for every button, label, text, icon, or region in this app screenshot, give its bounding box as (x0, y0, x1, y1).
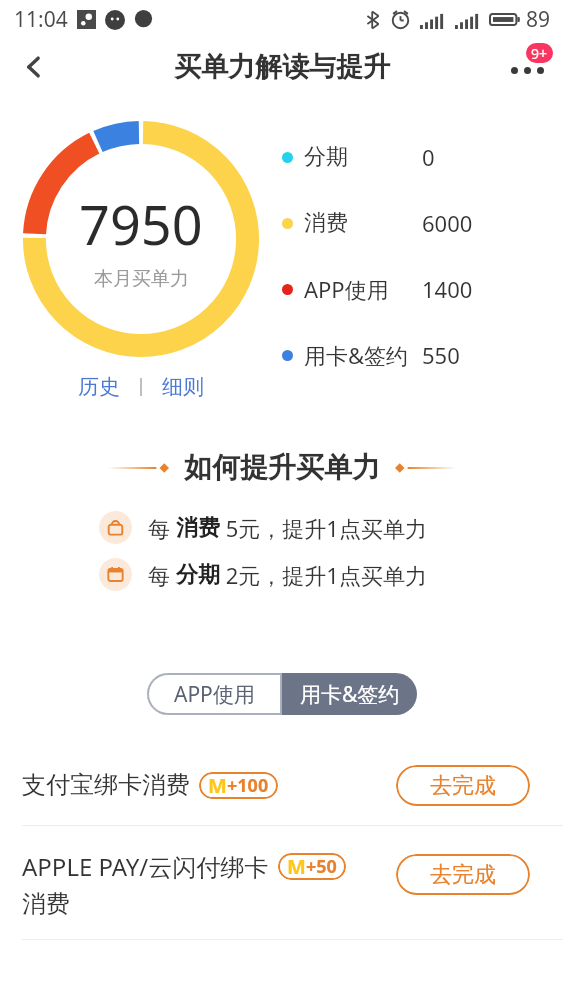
staticText: 用卡&签约 (304, 340, 409, 370)
staticText: M (208, 772, 227, 799)
button[interactable]: More options (499, 39, 555, 95)
staticText: 消费 (304, 209, 348, 237)
staticText: 历史 (78, 374, 120, 400)
staticText: 如何提升买单力 (184, 450, 380, 485)
staticText: 支付宝绑卡消费 (22, 770, 190, 800)
button[interactable]: APP使用 (147, 673, 282, 715)
staticText: 6000 (422, 208, 473, 238)
staticText: 买单力解读与提升 (174, 50, 390, 84)
staticText: M (287, 853, 306, 880)
button[interactable]: 细则 (156, 370, 210, 404)
staticText: 7950 (79, 187, 203, 261)
staticText: APP使用 (304, 274, 389, 304)
staticText: 每 (148, 560, 176, 590)
staticText: 1400 (422, 274, 473, 304)
staticText: 0 (422, 142, 435, 172)
staticText: 细则 (162, 374, 204, 400)
staticText: APP使用 (174, 680, 255, 709)
staticText: 去完成 (430, 772, 496, 800)
staticText: 550 (422, 340, 460, 370)
staticText: 分期 (176, 561, 220, 589)
staticText: 分期 (304, 143, 348, 171)
staticText: 本月买单力 (94, 267, 189, 291)
staticText: 5元，提升1点买单力 (220, 513, 427, 543)
staticText: 9+ (531, 44, 548, 63)
staticText: 每 (148, 513, 176, 543)
button[interactable]: 去完成 (396, 765, 530, 806)
button[interactable]: 去完成 (396, 854, 530, 895)
button[interactable]: Back (10, 43, 58, 91)
staticText: 用卡&签约 (300, 680, 400, 709)
staticText: +100 (227, 773, 269, 798)
button[interactable]: 用卡&签约 (282, 673, 417, 715)
staticText: 消费 (22, 889, 70, 919)
staticText: 2元，提升1点买单力 (220, 560, 427, 590)
staticText: 去完成 (430, 861, 496, 889)
staticText: 消费 (176, 514, 220, 542)
staticText: APPLE PAY/云闪付绑卡 (22, 850, 269, 883)
staticText: +50 (306, 854, 337, 879)
button[interactable]: 每 (0, 558, 563, 591)
button[interactable]: 每 (0, 511, 563, 544)
staticText: 11:04 (14, 5, 68, 34)
button[interactable]: 支付宝绑卡消费 (0, 745, 563, 825)
staticText: 89 (526, 5, 551, 34)
button[interactable]: 历史 (72, 370, 126, 404)
